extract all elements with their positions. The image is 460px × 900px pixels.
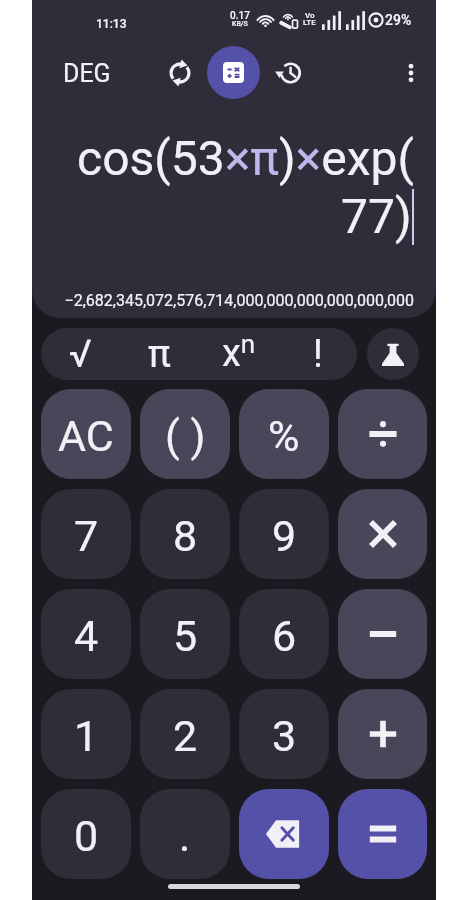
staticText: 1 (74, 711, 99, 761)
button[interactable]: Subtract (338, 589, 427, 679)
button[interactable]: Toggle angle unit (156, 49, 204, 97)
staticText: 8 (173, 511, 198, 561)
button[interactable]: AC (41, 389, 131, 479)
button[interactable]: 6 (239, 589, 329, 679)
staticText: 5 (173, 611, 198, 661)
staticText: % (268, 411, 300, 461)
staticText: 4 (74, 611, 99, 661)
button[interactable]: 7 (41, 489, 131, 579)
staticText: 7 (74, 511, 99, 561)
button[interactable]: Divide (338, 389, 427, 479)
staticText: xn (222, 329, 256, 375)
button[interactable]: History (265, 49, 313, 97)
button[interactable]: Multiply (338, 489, 427, 579)
button[interactable]: √ (41, 328, 120, 380)
staticText: √ (69, 332, 92, 377)
button[interactable]: DEG (59, 55, 115, 92)
staticText: KB/S (232, 20, 248, 28)
button[interactable]: 0 (41, 789, 131, 879)
staticText: 0.17 (230, 10, 250, 22)
button[interactable]: 3 (239, 689, 329, 779)
button[interactable]: 1 (41, 689, 131, 779)
staticText: 9 (272, 511, 297, 561)
button[interactable]: π (120, 328, 199, 380)
button[interactable]: ! (278, 328, 357, 380)
staticText: ! (313, 332, 323, 377)
button[interactable]: % (239, 389, 329, 479)
staticText: 2 (173, 711, 198, 761)
button[interactable]: xn (199, 328, 278, 380)
button[interactable]: Scientific (367, 328, 419, 380)
staticText: cos(53×π)×exp( (77, 130, 414, 188)
button[interactable]: 9 (239, 489, 329, 579)
staticText: LTE (303, 18, 316, 27)
staticText: 11:13 (96, 17, 127, 31)
staticText: π (148, 332, 171, 377)
button[interactable]: Add (338, 689, 427, 779)
button[interactable]: . (140, 789, 230, 879)
staticText: AC (58, 411, 114, 461)
button[interactable]: Equals (338, 789, 427, 879)
button[interactable]: 8 (140, 489, 230, 579)
button[interactable]: 2 (140, 689, 230, 779)
staticText: 29% (385, 12, 412, 28)
staticText: Vo (305, 11, 315, 20)
button[interactable]: ( ) (140, 389, 230, 479)
staticText: 3 (272, 711, 297, 761)
staticText: 77) (341, 188, 412, 246)
staticText: . (179, 811, 191, 861)
button[interactable]: 5 (140, 589, 230, 679)
staticText: 6 (272, 611, 297, 661)
staticText: 0 (74, 811, 99, 861)
button[interactable]: More options (387, 49, 435, 97)
button[interactable]: Backspace (239, 789, 329, 879)
staticText: ( ) (165, 411, 206, 461)
button[interactable]: Calculator mode (207, 46, 260, 99)
button[interactable]: 4 (41, 589, 131, 679)
staticText: −2,682,345,072,576,714,000,000,000,000,0… (32, 291, 414, 310)
